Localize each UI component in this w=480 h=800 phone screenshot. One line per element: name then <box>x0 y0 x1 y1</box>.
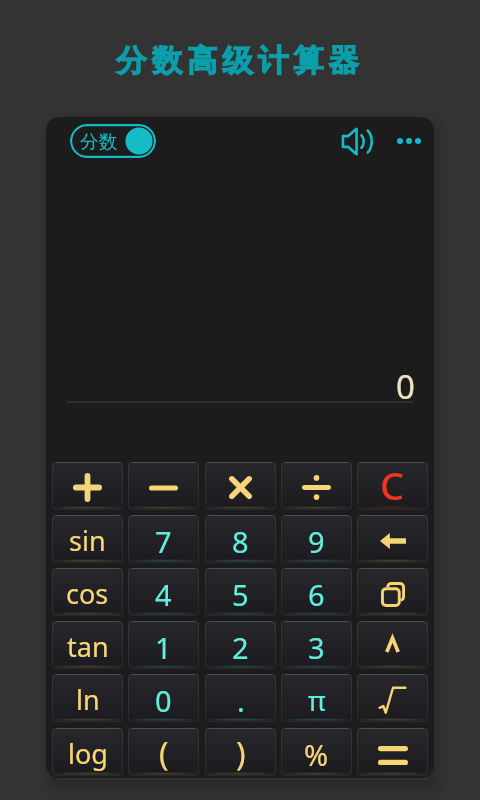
button[interactable]: 5 <box>205 568 276 616</box>
button[interactable]: 3 <box>281 621 352 669</box>
staticText: 1 <box>155 628 172 667</box>
button[interactable]: cos <box>52 568 123 616</box>
button[interactable]: sin <box>52 515 123 563</box>
button[interactable]: 6 <box>281 568 352 616</box>
staticText: ) <box>236 732 246 776</box>
staticText: 9 <box>308 522 325 561</box>
staticText: 8 <box>232 522 249 561</box>
button[interactable]: 9 <box>281 515 352 563</box>
button[interactable]: More options <box>391 123 427 159</box>
button[interactable]: 4 <box>128 568 199 616</box>
button[interactable]: Divide <box>281 462 352 510</box>
button[interactable]: tan <box>52 621 123 669</box>
staticText: 分数高级计算器 <box>0 42 480 80</box>
staticText: π <box>308 682 326 719</box>
staticText: 2 <box>232 628 249 667</box>
button[interactable]: log <box>52 728 123 776</box>
button[interactable]: Power <box>357 621 428 669</box>
staticText: log <box>68 735 108 772</box>
staticText: 6 <box>308 575 325 614</box>
staticText: 7 <box>155 522 172 561</box>
staticText: cos <box>66 575 109 612</box>
staticText: 3 <box>308 628 325 667</box>
button[interactable]: 1 <box>128 621 199 669</box>
staticText: 分数 <box>80 130 118 154</box>
button[interactable]: . <box>205 674 276 722</box>
button[interactable]: % <box>281 728 352 776</box>
button[interactable]: π <box>281 674 352 722</box>
button[interactable]: C <box>357 462 428 510</box>
staticText: sin <box>69 522 106 559</box>
button[interactable]: 2 <box>205 621 276 669</box>
button[interactable]: Copy <box>357 568 428 616</box>
button[interactable]: Square root <box>357 674 428 722</box>
button[interactable]: ( <box>128 728 199 776</box>
staticText: 0 <box>396 364 415 409</box>
button[interactable]: ) <box>205 728 276 776</box>
staticText: 4 <box>155 575 172 614</box>
staticText: . <box>237 681 245 720</box>
button[interactable]: Backspace <box>357 515 428 563</box>
button[interactable]: 0 <box>128 674 199 722</box>
button[interactable]: Equals <box>357 728 428 776</box>
staticText: 5 <box>232 575 249 614</box>
staticText: ( <box>159 732 169 776</box>
button[interactable]: Minus <box>128 462 199 510</box>
button[interactable]: Plus <box>52 462 123 510</box>
button[interactable]: ln <box>52 674 123 722</box>
staticText: 0 <box>155 681 172 720</box>
button[interactable]: 分数 <box>70 124 156 158</box>
staticText: tan <box>67 628 109 665</box>
button[interactable]: 8 <box>205 515 276 563</box>
staticText: % <box>304 735 329 774</box>
staticText: C <box>380 462 405 507</box>
button[interactable]: Sound <box>339 123 375 159</box>
button[interactable]: Multiply <box>205 462 276 510</box>
button[interactable]: 7 <box>128 515 199 563</box>
staticText: ln <box>76 681 100 718</box>
